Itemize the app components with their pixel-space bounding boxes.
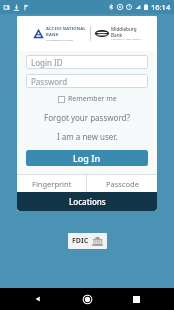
button[interactable]: Recents [125,288,147,310]
staticText: FDIC [72,236,89,246]
staticText: Bank [111,32,123,38]
staticText: Fingerprint [32,179,72,189]
staticText: Middleburg [111,26,137,32]
button[interactable]: Password [26,74,148,88]
staticText: Log In [73,152,101,164]
staticText: BANK [46,32,59,38]
staticText: Locations [69,196,106,207]
staticText: Password [31,76,68,87]
button[interactable]: Forgot your password? [44,111,130,124]
button[interactable]: Back [27,288,49,310]
button[interactable]: Fingerprint [17,175,86,192]
button[interactable]: Locations [17,192,157,211]
button[interactable]: I am a new user. [57,130,118,143]
staticText: ACCESS NATIONAL [46,26,86,32]
staticText: Login ID [31,57,63,68]
button[interactable]: Home [76,288,98,310]
staticText: Remember me [68,94,117,104]
button[interactable]: Login ID [26,55,148,69]
button[interactable]: Passcode [87,175,157,192]
button[interactable]: Log In [26,150,148,166]
staticText: I am a new user. [57,131,118,142]
staticText: Forgot your password? [44,112,130,123]
staticText: The Difference is Access [46,38,73,41]
staticText: A Division of Access National [111,38,141,41]
button[interactable]: Remember me [56,93,119,105]
staticText: Passcode [106,179,139,189]
staticText: 16:14 [151,2,171,12]
